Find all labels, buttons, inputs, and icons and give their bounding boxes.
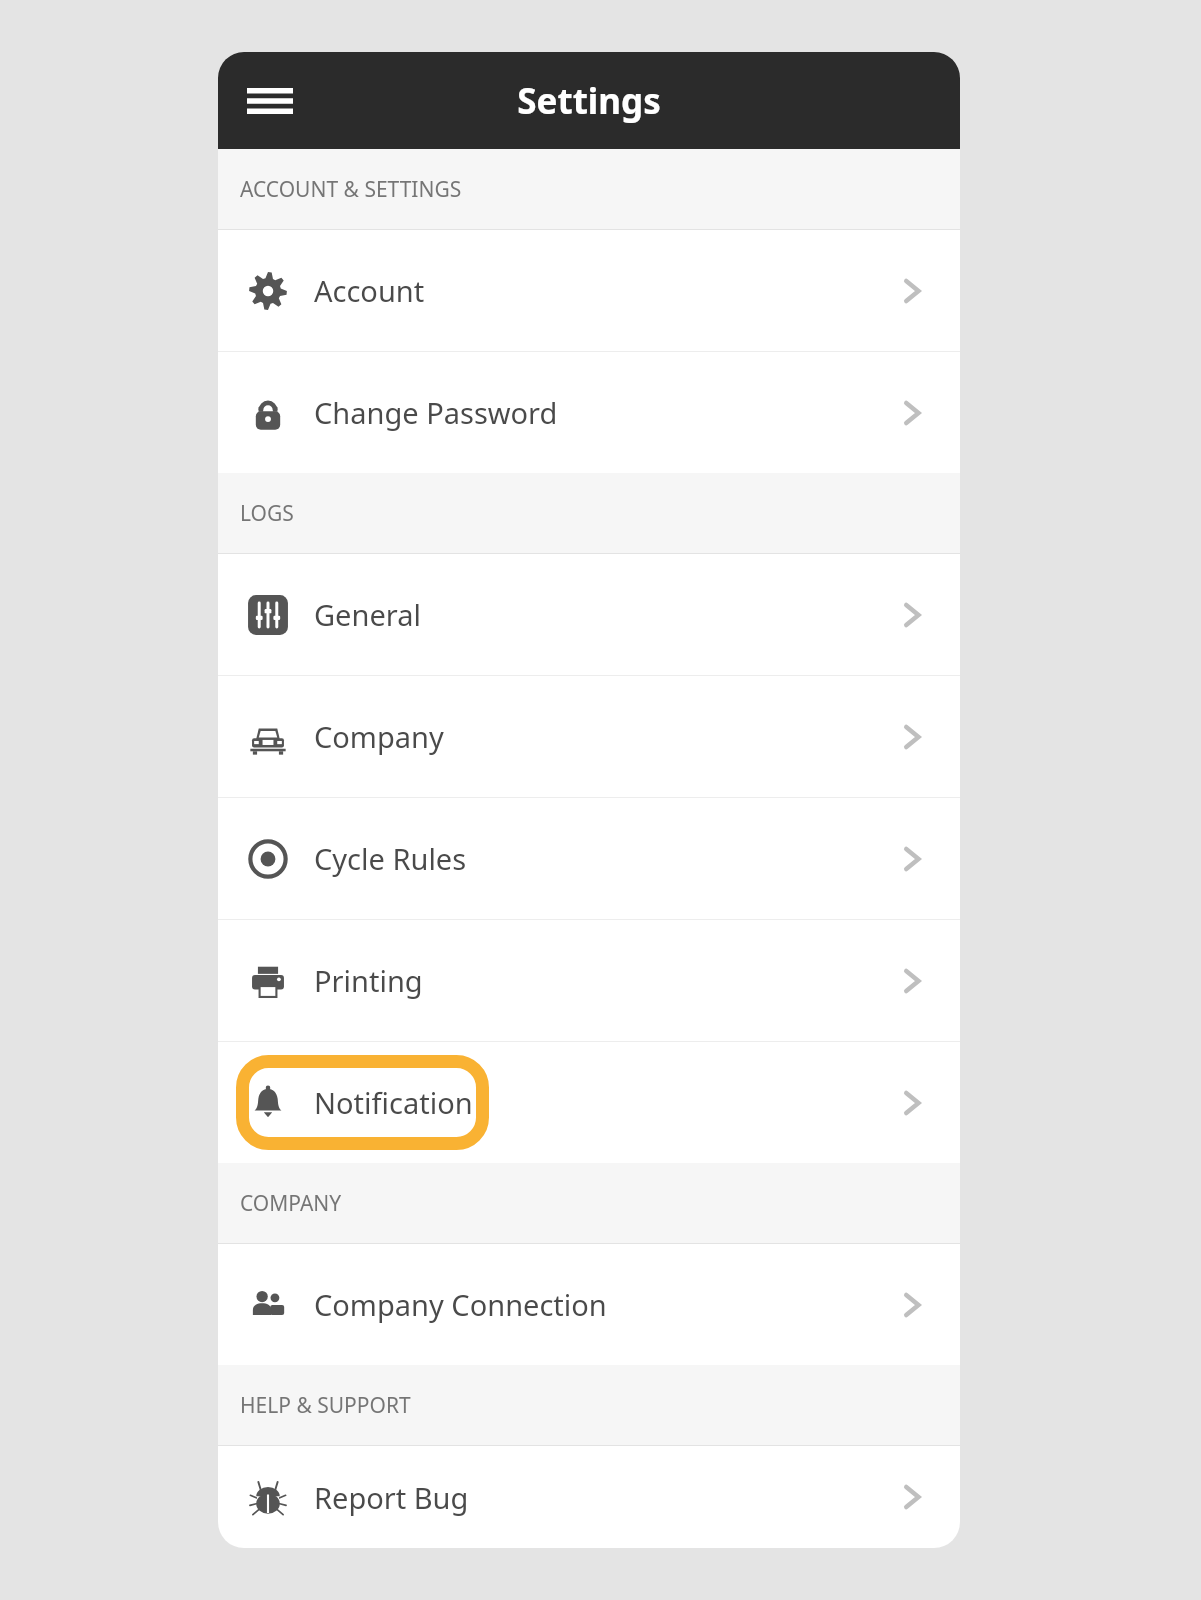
button[interactable]: Account [218,230,960,351]
staticText: HELP & SUPPORT [240,1391,411,1420]
button[interactable]: Company [218,676,960,797]
button[interactable]: Company Connection [218,1244,960,1365]
button[interactable]: Notification [218,1042,960,1163]
staticText: General [314,595,421,634]
button[interactable]: Report Bug [218,1446,960,1548]
button[interactable]: Printing [218,920,960,1041]
button[interactable]: Change Password [218,352,960,473]
staticText: Account [314,271,425,310]
staticText: ACCOUNT & SETTINGS [240,175,462,204]
button[interactable]: General [218,554,960,675]
staticText: LOGS [240,499,294,528]
button[interactable]: Cycle Rules [218,798,960,919]
button[interactable]: Open navigation menu [238,69,302,133]
staticText: Settings [517,77,661,125]
staticText: Notification [314,1083,473,1122]
staticText: Company [314,717,444,756]
staticText: Report Bug [314,1478,469,1517]
staticText: Cycle Rules [314,839,467,878]
staticText: COMPANY [240,1189,342,1218]
staticText: Change Password [314,393,558,432]
staticText: Company Connection [314,1285,607,1324]
staticText: Printing [314,961,423,1000]
